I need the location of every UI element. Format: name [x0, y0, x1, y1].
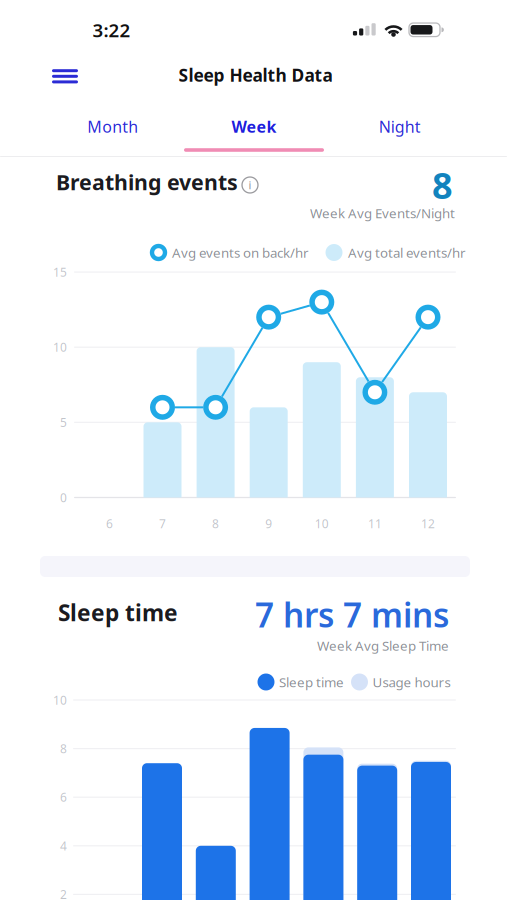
button[interactable]: i	[241, 176, 259, 194]
staticText: 7 hrs 7 mins	[255, 592, 449, 637]
staticText: Avg total events/hr	[348, 244, 466, 261]
staticText: 4	[60, 838, 67, 854]
staticText: 5	[60, 414, 67, 430]
staticText: 0	[60, 489, 67, 505]
staticText: Week Avg Sleep Time	[317, 637, 449, 654]
staticText: Sleep time	[58, 597, 178, 627]
staticText: 8	[212, 515, 219, 531]
staticText: Month	[87, 116, 138, 137]
staticText: 9	[265, 515, 272, 531]
staticText: 11	[368, 515, 382, 531]
button[interactable]: Night	[340, 109, 460, 143]
staticText: 8	[60, 741, 67, 756]
staticText: 3:22	[92, 18, 130, 42]
staticText: Week	[231, 116, 276, 137]
staticText: 15	[53, 264, 67, 280]
staticText: 6	[60, 789, 67, 805]
staticText: i	[248, 178, 251, 192]
button[interactable]	[52, 68, 78, 83]
staticText: 10	[53, 339, 67, 355]
staticText: Sleep Health Data	[178, 63, 332, 86]
staticText: 2	[60, 886, 67, 900]
staticText: Avg events on back/hr	[172, 244, 309, 261]
staticText: Breathing events	[56, 168, 238, 196]
staticText: Night	[379, 116, 421, 137]
staticText: 6	[106, 515, 113, 531]
button[interactable]: Month	[53, 109, 173, 143]
staticText: 10	[53, 692, 67, 708]
staticText: 10	[315, 515, 329, 531]
button[interactable]: Week	[194, 109, 314, 143]
staticText: 12	[421, 515, 435, 531]
staticText: 8	[432, 161, 453, 209]
staticText: Week Avg Events/Night	[310, 204, 455, 222]
staticText: Sleep time	[279, 673, 344, 691]
staticText: Usage hours	[372, 673, 450, 691]
staticText: 7	[159, 515, 166, 531]
